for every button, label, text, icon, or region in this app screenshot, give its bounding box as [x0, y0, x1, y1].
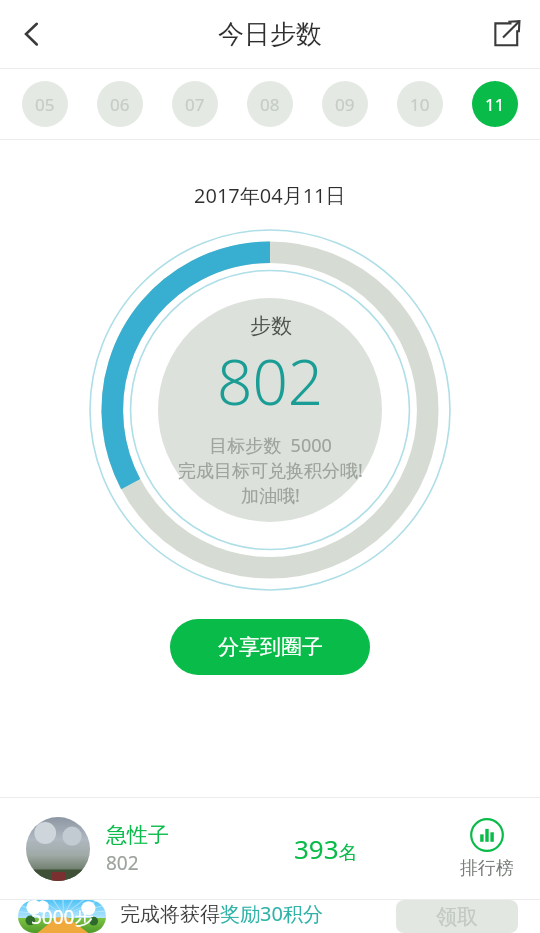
button[interactable]: Back [6, 8, 58, 60]
button[interactable]: 5000步 [18, 900, 106, 933]
staticText: 802 [217, 339, 324, 423]
button[interactable]: Share [480, 8, 532, 60]
staticText: 08 [260, 93, 280, 116]
button[interactable]: 分享到圈子 [170, 619, 370, 675]
staticText: 09 [335, 93, 355, 116]
staticText: 急性子 [106, 822, 169, 848]
button[interactable]: 08 [247, 81, 293, 127]
staticText: 10 [410, 93, 430, 116]
staticText: 加油哦! [241, 483, 300, 508]
staticText: 领取 [436, 904, 478, 930]
staticText: 目标步数 5000 [209, 433, 332, 458]
button[interactable]: 10 [397, 81, 443, 127]
staticText: 完成将获得奖励30积分 [120, 900, 323, 927]
button[interactable]: 05 [22, 81, 68, 127]
staticText: 11 [485, 93, 505, 116]
staticText: 今日步数 [218, 18, 322, 51]
button[interactable]: 06 [97, 81, 143, 127]
button[interactable]: 领取 [396, 900, 518, 933]
staticText: 07 [185, 93, 205, 116]
button[interactable]: 排行榜 [434, 798, 540, 899]
button[interactable]: 11 [472, 81, 518, 127]
staticText: 5000步 [31, 904, 94, 930]
staticText: 05 [35, 93, 55, 116]
button[interactable]: 09 [322, 81, 368, 127]
staticText: 步数 [250, 313, 292, 339]
staticText: 393名 [294, 831, 358, 866]
staticText: 分享到圈子 [218, 634, 323, 660]
staticText: 排行榜 [460, 857, 514, 880]
staticText: 802 [106, 850, 139, 876]
staticText: 2017年04月11日 [194, 182, 346, 209]
button[interactable] [26, 817, 90, 881]
staticText: 06 [110, 93, 130, 116]
staticText: 完成目标可兑换积分哦! [178, 458, 363, 483]
button[interactable]: 07 [172, 81, 218, 127]
